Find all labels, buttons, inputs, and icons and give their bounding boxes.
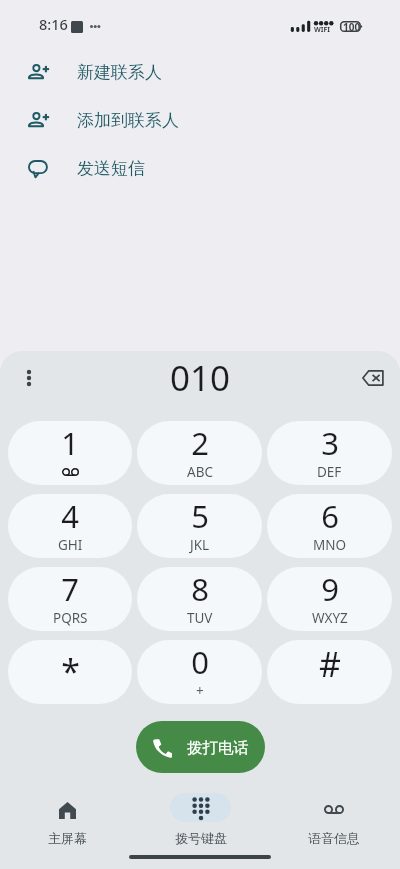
staticText: WIFI <box>314 25 331 35</box>
button[interactable]: 发送短信 <box>0 144 400 192</box>
staticText: PQRS <box>53 609 88 627</box>
button[interactable]: 1 <box>8 421 132 485</box>
staticText: 9 <box>321 568 339 610</box>
button[interactable]: 0 <box>137 640 262 704</box>
staticText: 2 <box>191 422 209 464</box>
button[interactable]: 拨打电话 <box>136 721 265 773</box>
staticText: 8:16 <box>39 14 68 34</box>
staticText: 3 <box>321 422 339 464</box>
staticText: ABC <box>187 463 213 481</box>
button[interactable]: Backspace <box>354 359 392 397</box>
button[interactable]: 新建联系人 <box>0 48 400 96</box>
button[interactable]: 5 <box>137 494 262 558</box>
button[interactable]: 9 <box>267 567 392 631</box>
staticText: 010 <box>170 354 231 402</box>
button[interactable]: More options <box>12 361 46 395</box>
staticText: GHI <box>58 536 83 554</box>
staticText: TUV <box>187 609 213 627</box>
staticText: 主屏幕 <box>48 830 87 846</box>
staticText: 100 <box>343 20 361 31</box>
staticText: 1 <box>61 422 79 464</box>
button[interactable]: # <box>267 640 392 704</box>
staticText: 6 <box>321 495 339 537</box>
button[interactable]: 3 <box>267 421 392 485</box>
button[interactable]: 添加到联系人 <box>0 96 400 144</box>
staticText: DEF <box>317 463 342 481</box>
button[interactable]: 4 <box>8 494 132 558</box>
button[interactable]: 6 <box>267 494 392 558</box>
staticText: # <box>319 641 341 687</box>
staticText: 语音信息 <box>308 830 360 846</box>
staticText: MNO <box>313 536 347 554</box>
staticText: 新建联系人 <box>77 62 162 83</box>
staticText: 5 <box>191 495 209 537</box>
staticText: 7 <box>61 568 79 610</box>
staticText: * <box>61 648 80 694</box>
staticText: 添加到联系人 <box>77 110 179 131</box>
button[interactable]: * <box>8 640 132 704</box>
staticText: JKL <box>190 536 210 554</box>
button[interactable]: 语音信息 <box>267 793 400 846</box>
staticText: 0 <box>191 641 209 683</box>
button[interactable]: 2 <box>137 421 262 485</box>
button[interactable]: 7 <box>8 567 132 631</box>
staticText: 8 <box>191 568 209 610</box>
staticText: 发送短信 <box>77 158 145 179</box>
staticText: 4 <box>61 495 79 537</box>
button[interactable]: 主屏幕 <box>0 793 134 846</box>
staticText: 拨打电话 <box>187 738 249 758</box>
staticText: WXYZ <box>312 609 348 627</box>
button[interactable]: 拨号键盘 <box>134 793 267 846</box>
staticText: + <box>196 682 204 700</box>
staticText: 拨号键盘 <box>175 830 227 846</box>
button[interactable]: 8 <box>137 567 262 631</box>
